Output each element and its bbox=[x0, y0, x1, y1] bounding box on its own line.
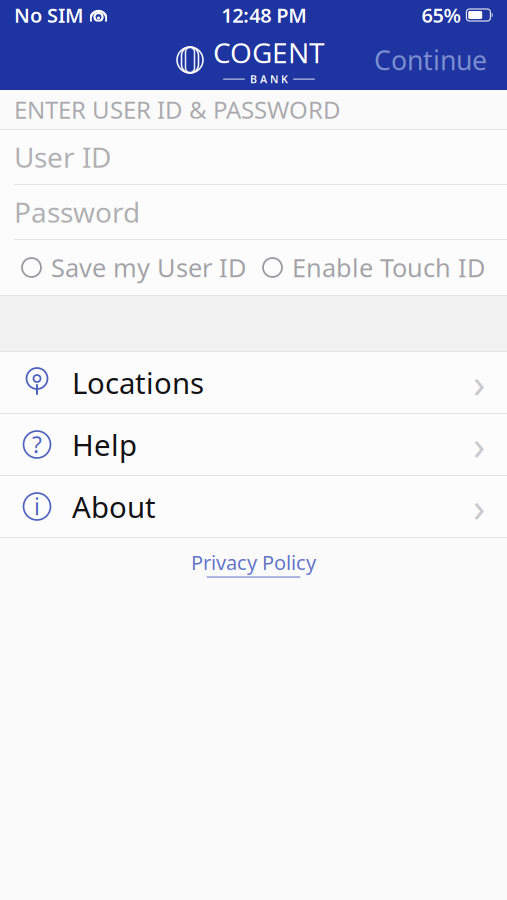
button[interactable]: ? bbox=[0, 414, 507, 476]
button[interactable]: Save my User ID bbox=[22, 251, 246, 284]
staticText: › bbox=[473, 418, 485, 471]
staticText: Continue bbox=[374, 42, 487, 78]
button[interactable]: Continue bbox=[360, 34, 501, 86]
staticText: Locations bbox=[72, 363, 204, 402]
staticText: Save my User ID bbox=[51, 251, 246, 284]
staticText: No SIM bbox=[14, 2, 84, 28]
button[interactable]: Privacy Policy bbox=[191, 538, 316, 589]
staticText: B A N K bbox=[250, 72, 288, 86]
staticText: User ID bbox=[14, 138, 111, 176]
staticText: ? bbox=[32, 429, 42, 459]
staticText: 65% bbox=[421, 2, 461, 28]
button[interactable]: Locations bbox=[0, 352, 507, 414]
button[interactable]: i bbox=[0, 476, 507, 538]
staticText: Enable Touch ID bbox=[292, 251, 485, 284]
staticText: Help bbox=[72, 425, 137, 464]
staticText: COGENT bbox=[213, 34, 325, 71]
button[interactable]: Enable Touch ID bbox=[263, 251, 485, 284]
staticText: › bbox=[473, 356, 485, 409]
staticText: Privacy Policy bbox=[191, 549, 316, 576]
staticText: Password bbox=[14, 193, 140, 231]
staticText: ENTER USER ID & PASSWORD bbox=[14, 94, 341, 125]
staticText: › bbox=[473, 480, 485, 533]
staticText: About bbox=[72, 487, 156, 526]
staticText: i bbox=[34, 491, 40, 521]
staticText: 12:48 PM bbox=[221, 2, 307, 28]
